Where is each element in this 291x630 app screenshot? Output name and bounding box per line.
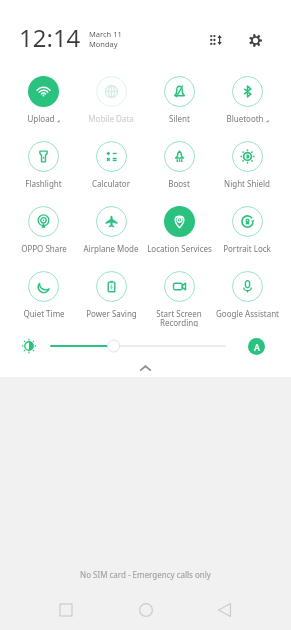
button[interactable]: Edit tiles	[203, 27, 229, 53]
staticText: Flashlight	[25, 178, 62, 189]
button[interactable]: Location Services	[145, 197, 213, 262]
staticText: Portrait Lock	[223, 243, 271, 254]
button[interactable]: Bluetooth	[213, 67, 281, 132]
button[interactable]: Recents	[46, 590, 86, 630]
button[interactable]: Flashlight	[10, 132, 77, 197]
staticText: Google Assistant	[216, 308, 279, 319]
button[interactable]: Airplane Mode	[77, 197, 145, 262]
button[interactable]: Settings	[242, 27, 268, 53]
button[interactable]: A	[248, 338, 265, 355]
button[interactable]: Mobile Data	[77, 67, 145, 132]
staticText: Location Services	[147, 243, 212, 254]
staticText: A	[254, 341, 260, 353]
staticText: March 11	[89, 29, 122, 39]
staticText: Airplane Mode	[83, 243, 139, 254]
staticText: Monday	[89, 39, 118, 49]
button[interactable]: Start Screen Recording	[145, 262, 213, 327]
staticText: OPPO Share	[21, 243, 67, 254]
button[interactable]: Calculator	[77, 132, 145, 197]
staticText: Power Saving	[86, 308, 137, 319]
button[interactable]: Power Saving	[77, 262, 145, 327]
button[interactable]: Boost	[145, 132, 213, 197]
button[interactable]: Back	[204, 590, 244, 630]
staticText: Mobile Data	[88, 113, 134, 124]
button[interactable]: Upload	[10, 67, 77, 132]
button[interactable]: Silent	[145, 67, 213, 132]
staticText: Start Screen Recording	[145, 308, 213, 327]
staticText: Silent	[169, 113, 190, 124]
staticText: Night Shield	[224, 178, 270, 189]
button[interactable]: Brightness	[44, 336, 232, 356]
staticText: Bluetooth	[226, 113, 264, 124]
staticText: No SIM card - Emergency calls only	[0, 569, 291, 580]
button[interactable]: Portrait Lock	[213, 197, 281, 262]
staticText: Upload	[27, 113, 55, 124]
staticText: Calculator	[92, 178, 130, 189]
button[interactable]: Night Shield	[213, 132, 281, 197]
button[interactable]: Quiet Time	[10, 262, 77, 327]
button[interactable]: Google Assistant	[213, 262, 281, 327]
button[interactable]: OPPO Share	[10, 197, 77, 262]
staticText: Boost	[168, 178, 190, 189]
staticText: 12:14	[19, 21, 81, 54]
button[interactable]: Collapse	[0, 358, 291, 377]
staticText: Quiet Time	[23, 308, 65, 319]
button[interactable]: Home	[126, 590, 166, 630]
